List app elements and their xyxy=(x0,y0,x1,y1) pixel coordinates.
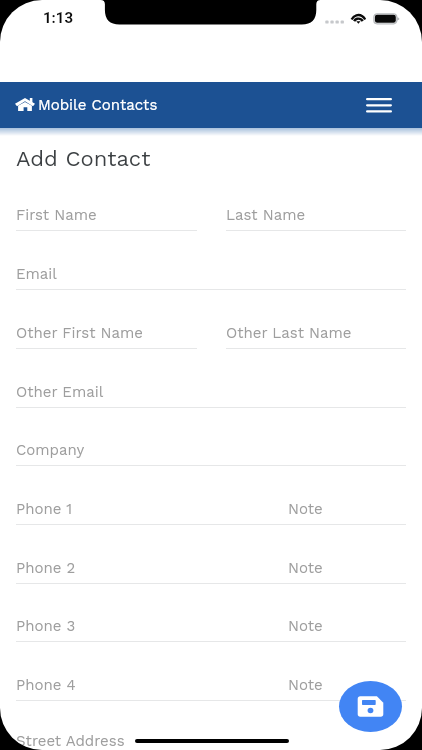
button[interactable]: Phone 4 xyxy=(16,673,406,701)
button[interactable]: Other First Name xyxy=(16,321,197,349)
staticText: Note xyxy=(288,617,323,635)
button[interactable]: Last Name xyxy=(226,203,406,231)
staticText: Street Address xyxy=(16,732,125,750)
button[interactable]: Other Last Name xyxy=(226,321,406,349)
button[interactable]: Street Address xyxy=(16,732,406,750)
staticText: Company xyxy=(16,441,85,459)
button[interactable]: Phone 1 xyxy=(16,497,406,525)
button[interactable]: Open navigation menu xyxy=(361,85,397,125)
button[interactable]: Save contact xyxy=(339,681,402,732)
staticText: Note xyxy=(288,500,323,518)
staticText: Phone 1 xyxy=(16,500,73,518)
staticText: Note xyxy=(288,676,323,694)
button[interactable]: First Name xyxy=(16,203,197,231)
button[interactable]: Phone 2 xyxy=(16,556,406,584)
button[interactable]: Company xyxy=(16,438,406,466)
staticText: Other First Name xyxy=(16,324,143,342)
button[interactable]: Phone 3 xyxy=(16,614,406,642)
staticText: Phone 3 xyxy=(16,617,76,635)
staticText: Last Name xyxy=(226,206,306,224)
staticText: Mobile Contacts xyxy=(38,96,158,114)
staticText: Other Email xyxy=(16,383,104,401)
button[interactable]: Mobile Contacts xyxy=(15,96,158,114)
staticText: Phone 4 xyxy=(16,676,76,694)
staticText: Note xyxy=(288,559,323,577)
staticText: Add Contact xyxy=(16,146,151,172)
staticText: Email xyxy=(16,265,57,283)
staticText: Other Last Name xyxy=(226,324,352,342)
staticText: Phone 2 xyxy=(16,559,76,577)
staticText: First Name xyxy=(16,206,97,224)
button[interactable]: Email xyxy=(16,262,406,290)
button[interactable]: Other Email xyxy=(16,380,406,408)
staticText: 1:13 xyxy=(43,9,74,27)
